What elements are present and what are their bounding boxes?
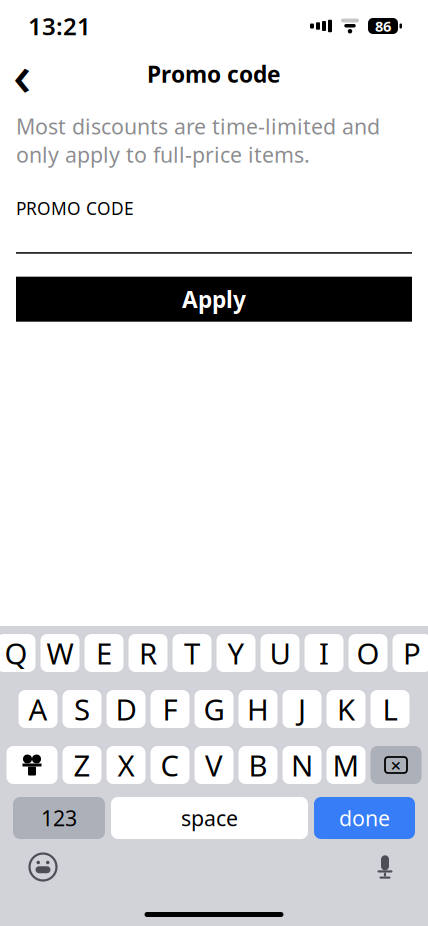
button[interactable]: Q [0,634,35,672]
staticText: Z [73,745,90,784]
button[interactable]: Shift [6,746,57,784]
button[interactable]: F [150,690,189,728]
button[interactable]: G [194,690,233,728]
staticText: G [203,689,224,728]
staticText: 13:21 [28,10,91,42]
staticText: U [269,633,290,672]
staticText: ‹ [13,37,31,111]
staticText: PROMO CODE [16,197,134,220]
staticText: J [298,689,306,728]
button[interactable]: Z [62,746,101,784]
button[interactable]: T [172,634,211,672]
button[interactable]: W [40,634,79,672]
staticText: C [160,745,179,784]
staticText: H [247,689,269,728]
button[interactable]: A [18,690,57,728]
button[interactable]: K [326,690,365,728]
button[interactable]: H [238,690,277,728]
staticText: Y [227,633,244,672]
button[interactable]: S [62,690,101,728]
staticText: V [205,745,223,784]
button[interactable]: D [106,690,145,728]
button[interactable]: O [348,634,387,672]
staticText: L [382,689,397,728]
staticText: Apply [182,284,246,314]
button[interactable]: Dictation [365,847,405,887]
staticText: W [46,633,73,672]
staticText: 123 [41,804,77,832]
staticText: X [117,745,134,784]
staticText: × [390,753,401,777]
staticText: P [403,633,421,672]
staticText: T [184,633,200,672]
staticText: Q [4,633,27,672]
staticText: S [74,689,90,728]
button[interactable]: U [260,634,299,672]
button[interactable]: N [282,746,321,784]
staticText: done [339,804,390,832]
staticText: B [248,745,267,784]
staticText: Most discounts are time-limited and only… [16,112,380,169]
button[interactable]: Delete [370,746,421,784]
button[interactable]: P [392,634,428,672]
button[interactable]: 123 [13,797,105,839]
button[interactable]: J [282,690,321,728]
staticText: R [139,633,157,672]
button[interactable]: Back [0,52,44,96]
staticText: Promo code [147,59,281,89]
button[interactable]: B [238,746,277,784]
button[interactable]: M [326,746,365,784]
button[interactable]: I [304,634,343,672]
button[interactable]: E [84,634,123,672]
button[interactable]: X [106,746,145,784]
button[interactable]: L [370,690,409,728]
button[interactable]: R [128,634,167,672]
staticText: F [162,689,177,728]
button[interactable]: done [314,797,415,839]
staticText: I [319,633,329,672]
staticText: O [356,633,379,672]
button[interactable]: space [111,797,308,839]
button[interactable]: Y [216,634,255,672]
staticText: E [96,633,112,672]
staticText: A [28,689,47,728]
button[interactable]: Apply [16,277,412,322]
staticText: D [115,689,136,728]
staticText: N [291,745,313,784]
button[interactable]: V [194,746,233,784]
staticText: 86 [375,16,391,36]
staticText: K [337,689,355,728]
button[interactable]: Emoji [23,847,63,887]
button[interactable]: C [150,746,189,784]
staticText: M [332,745,359,784]
staticText: space [181,804,238,832]
